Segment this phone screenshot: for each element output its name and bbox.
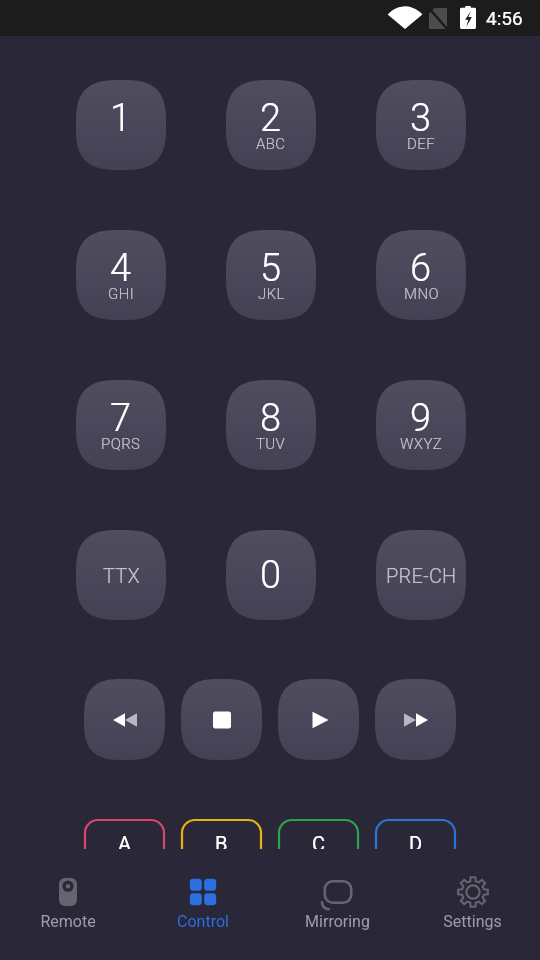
button[interactable]: B [181,819,262,877]
staticText: 4:56 [486,7,523,29]
staticText: Settings [443,912,502,931]
staticText: 0 [260,553,282,598]
staticText: 5 [260,246,282,291]
button[interactable]: Mirroring [270,868,405,941]
staticText: TUV [256,435,286,453]
staticText: WXYZ [400,435,443,453]
staticText: 8 [260,396,282,441]
button[interactable]: 7 [76,380,166,470]
button[interactable]: Control [135,868,270,941]
button[interactable]: Play [278,679,359,760]
staticText: B [215,832,228,855]
staticText: TTX [103,564,140,587]
button[interactable]: PRE-CH [376,530,466,620]
staticText: 3 [410,96,432,141]
button[interactable]: C [278,819,359,877]
staticText: PQRS [101,435,141,453]
button[interactable]: 2 [226,80,316,170]
staticText: DEF [407,135,435,153]
button[interactable]: Rewind [84,679,165,760]
staticText: C [312,832,326,855]
button[interactable]: 0 [226,530,316,620]
button[interactable]: Stop [181,679,262,760]
staticText: 6 [410,246,432,291]
button[interactable]: Fast forward [375,679,456,760]
button[interactable]: TTX [76,530,166,620]
staticText: D [409,832,423,855]
button[interactable]: 8 [226,380,316,470]
staticText: Remote [40,912,96,931]
button[interactable]: 5 [226,230,316,320]
staticText: Control [177,912,229,931]
staticText: 1 [110,96,132,141]
button[interactable]: 4 [76,230,166,320]
staticText: MNO [404,285,439,303]
button[interactable]: 3 [376,80,466,170]
staticText: Mirroring [305,912,370,931]
staticText: 4 [110,246,132,291]
staticText: PRE-CH [386,564,457,587]
staticText: 7 [110,396,132,441]
button[interactable]: 1 [76,80,166,170]
button[interactable]: 6 [376,230,466,320]
button[interactable]: D [375,819,456,877]
staticText: GHI [108,285,135,303]
button[interactable]: A [84,819,165,877]
button[interactable]: Remote [0,868,135,941]
staticText: ABC [256,135,286,153]
button[interactable]: Settings [405,868,540,941]
staticText: A [118,832,132,855]
staticText: 2 [260,96,282,141]
staticText: 9 [410,396,432,441]
staticText: JKL [258,285,285,303]
button[interactable]: 9 [376,380,466,470]
